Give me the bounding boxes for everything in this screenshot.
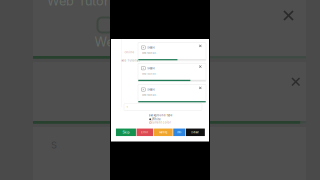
staticText: Online [124,51,134,54]
staticText: Skip [122,130,129,134]
button[interactable]: Warning [154,129,173,136]
staticText: Skype [147,67,155,70]
staticText: White [152,118,161,121]
button[interactable]: Skip [116,129,136,136]
staticText: Warning [159,131,168,134]
staticText: Web Tutorials [47,0,129,9]
staticText: Web [94,34,121,50]
staticText: Skype [147,46,155,49]
staticText: Skype [147,88,155,91]
button[interactable]: Info [173,129,185,136]
staticText: Background type [149,114,173,117]
staticText: Default [191,131,199,134]
button[interactable]: Close [198,85,203,91]
staticText: Current color [151,121,171,124]
button[interactable]: Close [198,43,203,49]
staticText: Web Tutorials [120,59,139,62]
button[interactable]: Error [136,129,153,136]
button[interactable]: Default [186,129,205,136]
staticText: Web Tutorials [142,73,156,75]
staticText: Info [177,131,182,134]
staticText: S [51,139,57,151]
staticText: 1 [126,105,127,109]
button[interactable]: Close [198,64,203,69]
staticText: Web Tutorials [142,94,156,97]
staticText: Error [141,131,148,134]
staticText: Web Tutorials [142,52,156,55]
